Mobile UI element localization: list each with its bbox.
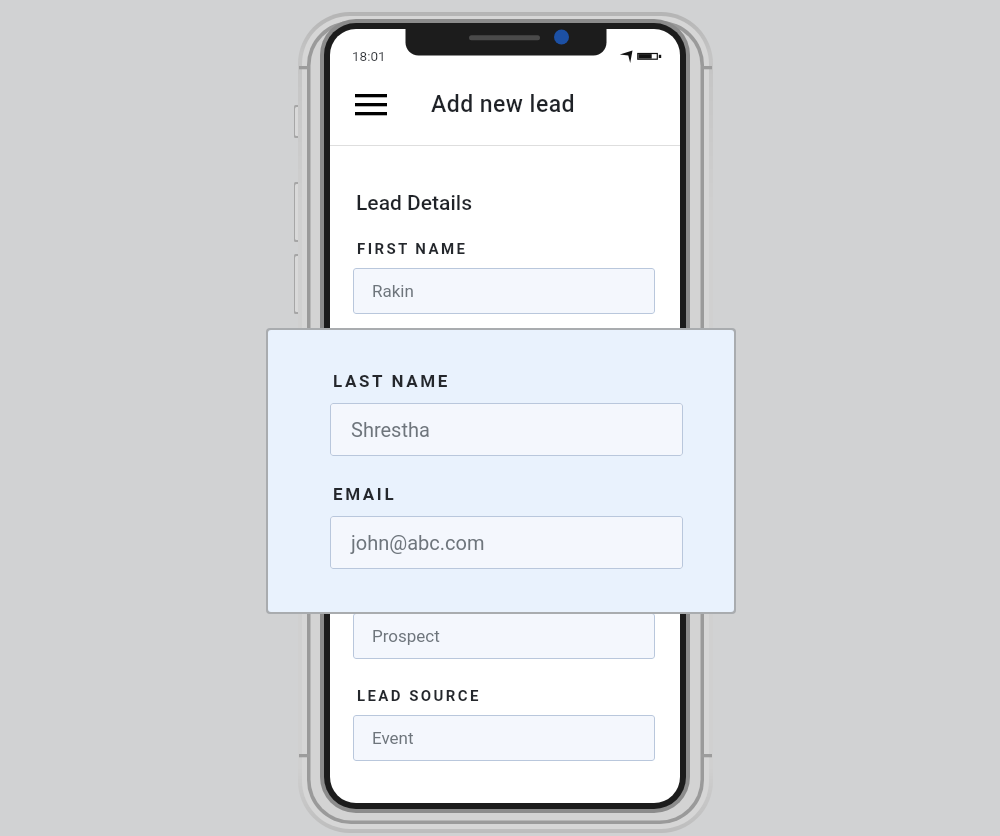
button[interactable]: Prospect: [353, 613, 655, 659]
button[interactable]: Open navigation menu: [354, 89, 388, 119]
staticText: Shrestha: [351, 418, 430, 441]
button[interactable]: Shrestha: [353, 370, 655, 416]
staticText: Shrestha: [372, 383, 440, 403]
staticText: Event: [372, 728, 414, 748]
staticText: Add new lead: [431, 91, 576, 118]
staticText: LAST NAME: [333, 371, 450, 391]
staticText: 18:01: [352, 48, 386, 64]
staticText: EMAIL: [357, 444, 414, 462]
staticText: LEAD SOURCE: [357, 687, 481, 705]
staticText: Rakin: [372, 281, 414, 301]
staticText: FIRST NAME: [357, 240, 468, 258]
staticText: Lead Details: [356, 191, 473, 216]
button[interactable]: Event: [353, 715, 655, 761]
button[interactable]: Shrestha: [330, 403, 683, 456]
button[interactable]: john@abc.com: [353, 472, 655, 518]
button[interactable]: Rakin: [353, 268, 655, 314]
button[interactable]: john@abc.com: [330, 516, 683, 569]
staticText: john@abc.com: [372, 485, 486, 505]
staticText: john@abc.com: [351, 531, 485, 554]
staticText: EMAIL: [333, 484, 397, 504]
staticText: Prospect: [372, 626, 440, 646]
